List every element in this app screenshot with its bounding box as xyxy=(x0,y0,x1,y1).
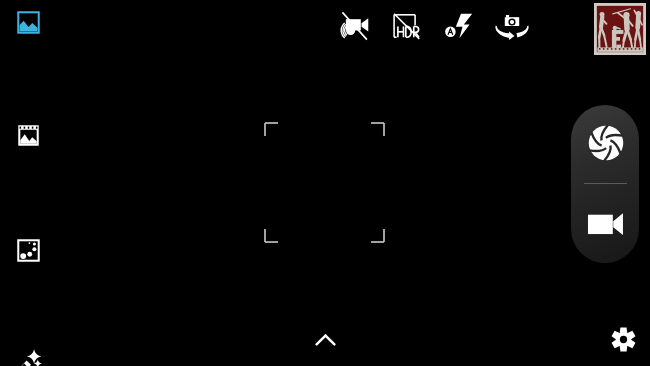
button[interactable]: HDR off xyxy=(392,12,422,40)
button[interactable]: Settings xyxy=(610,326,637,353)
button[interactable]: Record video xyxy=(582,200,628,246)
button[interactable]: Effects xyxy=(13,235,44,266)
button[interactable]: Shooting mode xyxy=(13,120,44,151)
button[interactable]: Switch camera xyxy=(494,9,530,43)
button[interactable]: Sound off xyxy=(337,9,371,43)
button[interactable]: Show more options xyxy=(312,330,339,350)
button[interactable]: Beauty face xyxy=(13,345,44,366)
button[interactable]: Last photo xyxy=(594,3,646,55)
button[interactable]: Take photo xyxy=(583,120,629,166)
button[interactable]: Flash auto xyxy=(444,10,476,42)
button[interactable]: Gallery xyxy=(13,7,44,38)
